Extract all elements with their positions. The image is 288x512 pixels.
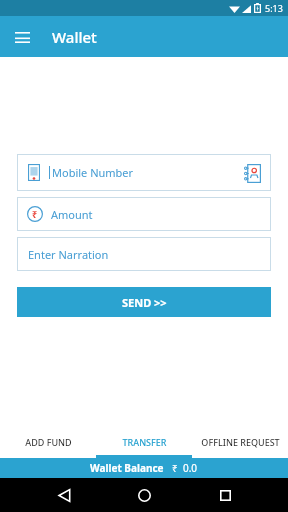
button[interactable]: TRANSFER (96, 425, 192, 458)
button[interactable]: Recents (208, 478, 242, 512)
staticText: Enter Narration (28, 247, 109, 262)
button[interactable]: Mobile Number (17, 154, 271, 191)
staticText: Wallet Balance (90, 461, 164, 475)
staticText: ₹ 0.0 (172, 461, 198, 475)
staticText: OFFLINE REQUEST (201, 436, 280, 448)
button[interactable]: ₹ (17, 197, 271, 231)
button[interactable]: Home (127, 478, 161, 512)
staticText: ₹ (32, 208, 38, 220)
button[interactable]: ADD FUND (0, 425, 96, 458)
staticText: Mobile Number (52, 165, 134, 180)
staticText: 5:13 (265, 2, 283, 14)
button[interactable]: Enter Narration (17, 237, 271, 271)
staticText: SEND >> (122, 295, 167, 310)
button[interactable]: Menu (8, 23, 36, 51)
button[interactable]: OFFLINE REQUEST (192, 425, 288, 458)
button[interactable]: Back (47, 478, 81, 512)
staticText: ADD FUND (25, 436, 72, 448)
staticText: Wallet (52, 27, 97, 47)
staticText: Amount (51, 207, 93, 222)
button[interactable]: SEND >> (17, 287, 271, 317)
button[interactable]: Pick contact (239, 160, 265, 186)
staticText: TRANSFER (122, 436, 167, 448)
